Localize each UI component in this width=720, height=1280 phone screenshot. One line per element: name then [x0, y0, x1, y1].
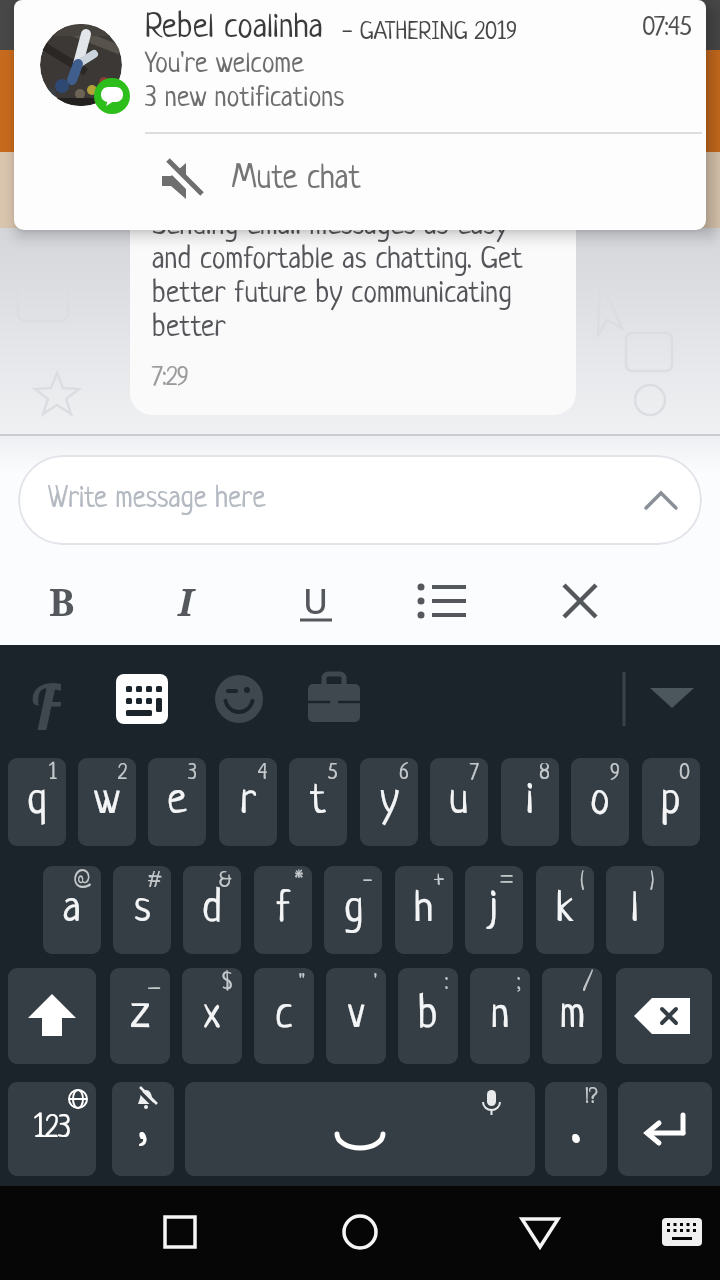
staticText: o: [590, 779, 610, 825]
staticText: ': [374, 972, 377, 995]
staticText: Sending email messages as easy: [152, 210, 509, 243]
button[interactable]: Write message here: [18, 455, 702, 545]
staticText: 123: [34, 1112, 71, 1146]
button[interactable]: f: [254, 866, 312, 954]
button[interactable]: i: [501, 758, 559, 846]
staticText: 5: [328, 762, 338, 785]
staticText: f: [276, 887, 291, 933]
button[interactable]: [636, 668, 712, 730]
staticText: Mute chat: [232, 162, 361, 198]
staticText: better future by communicating: [152, 278, 512, 311]
button[interactable]: ,: [112, 1082, 174, 1176]
button[interactable]: b: [398, 968, 458, 1064]
staticText: e: [167, 779, 187, 825]
button[interactable]: [414, 575, 470, 627]
staticText: d: [202, 887, 222, 933]
button[interactable]: k: [536, 866, 594, 954]
staticText: U: [303, 578, 329, 624]
staticText: and comfortable as chatting. Get: [152, 244, 523, 277]
button[interactable]: c: [254, 968, 314, 1064]
staticText: I: [178, 575, 194, 627]
button[interactable]: [130, 198, 576, 415]
button[interactable]: m: [542, 968, 602, 1064]
staticText: j: [490, 887, 498, 933]
button[interactable]: y: [360, 758, 418, 846]
button[interactable]: [324, 1196, 396, 1268]
staticText: *: [295, 870, 303, 893]
button[interactable]: r: [219, 758, 277, 846]
staticText: 1: [49, 762, 57, 785]
staticText: 3: [188, 762, 197, 785]
staticText: :: [445, 972, 449, 995]
button[interactable]: [616, 968, 712, 1064]
button[interactable]: Rebel coalinha: [14, 0, 706, 230]
button[interactable]: a: [43, 866, 101, 954]
staticText: /: [583, 972, 593, 995]
staticText: 07:45: [642, 14, 692, 42]
button[interactable]: U: [288, 575, 344, 627]
staticText: 0: [679, 762, 691, 785]
staticText: p: [661, 779, 681, 825]
staticText: i: [526, 779, 534, 825]
staticText: 7: [470, 762, 479, 785]
staticText: &: [219, 870, 232, 893]
staticText: 8: [539, 762, 550, 785]
button[interactable]: l: [606, 866, 664, 954]
button[interactable]: [504, 1196, 576, 1268]
button[interactable]: e: [148, 758, 206, 846]
staticText: 9: [610, 762, 620, 785]
button[interactable]: z: [110, 968, 170, 1064]
staticText: #: [148, 870, 162, 893]
button[interactable]: 123: [8, 1082, 96, 1176]
button[interactable]: F: [18, 668, 74, 730]
staticText: n: [491, 993, 510, 1039]
staticText: $: [222, 972, 233, 995]
staticText: You're welcome: [145, 50, 304, 81]
staticText: B: [49, 575, 75, 627]
button[interactable]: p: [642, 758, 700, 846]
staticText: g: [344, 887, 363, 933]
button[interactable]: o: [571, 758, 629, 846]
staticText: z: [131, 993, 150, 1039]
staticText: t: [310, 779, 326, 825]
staticText: k: [556, 887, 574, 933]
staticText: Write message here: [48, 484, 266, 516]
button[interactable]: [552, 575, 608, 627]
button[interactable]: j: [465, 866, 523, 954]
button[interactable]: s: [113, 866, 171, 954]
button[interactable]: [185, 1082, 535, 1176]
button[interactable]: v: [326, 968, 386, 1064]
button[interactable]: [116, 674, 168, 724]
staticText: ): [650, 870, 655, 893]
button[interactable]: t: [289, 758, 347, 846]
button[interactable]: I: [158, 575, 214, 627]
staticText: y: [380, 779, 399, 825]
button[interactable]: w: [78, 758, 136, 846]
staticText: 3 new notifications: [145, 84, 345, 115]
staticText: - GATHERING 2019: [342, 20, 518, 46]
staticText: q: [27, 779, 47, 825]
button[interactable]: h: [395, 866, 453, 954]
button[interactable]: [308, 672, 360, 726]
staticText: _: [148, 972, 161, 995]
button[interactable]: [650, 1205, 712, 1259]
staticText: F: [32, 668, 61, 730]
button[interactable]: [8, 968, 96, 1064]
button[interactable]: d: [183, 866, 241, 954]
button[interactable]: n: [470, 968, 530, 1064]
button[interactable]: x: [182, 968, 242, 1064]
staticText: 7:29: [152, 364, 189, 392]
staticText: w: [94, 779, 120, 825]
button[interactable]: q: [8, 758, 66, 846]
button[interactable]: B: [34, 575, 90, 627]
button[interactable]: [214, 674, 264, 724]
button[interactable]: [144, 1196, 216, 1268]
staticText: @: [74, 870, 92, 893]
button[interactable]: Mute chat: [134, 146, 434, 216]
button[interactable]: u: [430, 758, 488, 846]
button[interactable]: [618, 1082, 712, 1176]
button[interactable]: g: [324, 866, 382, 954]
staticText: l: [631, 887, 639, 933]
staticText: ,: [138, 1094, 148, 1155]
button[interactable]: .: [545, 1082, 607, 1176]
